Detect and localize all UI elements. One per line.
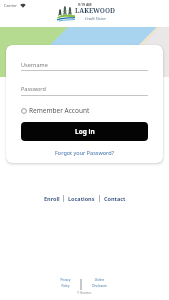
staticText: LAKEWOOD [75, 6, 116, 15]
staticText: Password [21, 85, 46, 92]
staticText: Online Disclosure [92, 278, 107, 287]
button[interactable]: Forgot your Password? [55, 149, 115, 156]
staticText: 9:19 AM [78, 2, 92, 7]
button[interactable]: Enroll [44, 195, 60, 202]
staticText: Credit Union [85, 16, 106, 21]
button[interactable]: Privacy Policy [52, 278, 78, 287]
staticText: Username [21, 61, 48, 68]
staticText: Privacy Policy [60, 278, 71, 287]
staticText: © Sharetec [77, 291, 92, 295]
button[interactable]: Locations [68, 195, 95, 202]
staticText: Carrier [4, 3, 18, 8]
staticText: Log in [75, 127, 95, 136]
button[interactable]: Remember Account [21, 106, 90, 115]
staticText: Remember Account [29, 106, 90, 115]
button[interactable]: Contact [104, 195, 126, 202]
button[interactable]: Log in [21, 122, 148, 141]
button[interactable]: Online Disclosure [85, 278, 113, 287]
